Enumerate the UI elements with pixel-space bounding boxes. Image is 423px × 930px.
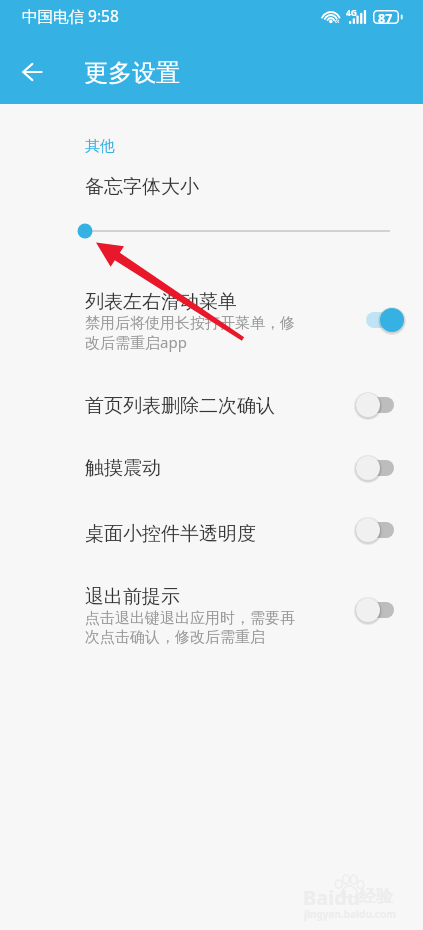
staticText: 列表左右滑动菜单 [85,290,237,314]
staticText: 桌面小控件半透明度 [85,522,256,546]
staticText: 点击退出键退出应用时，需要再 次点击确认，修改后需重启 [85,609,295,647]
staticText: 禁用后将使用长按打开菜单，修 改后需重启app [85,314,295,352]
staticText: jingyan.baidu.com [304,907,396,921]
button[interactable]: 退出前提示 关 [356,597,404,623]
button[interactable]: 列表左右滑动菜单 [0,276,423,362]
button[interactable]: 首页列表删除二次确认 [0,380,423,428]
staticText: Baidu [303,884,360,911]
button[interactable]: 桌面小控件半透明度 [0,508,423,556]
staticText: 退出前提示 [85,585,180,609]
button[interactable]: 首页列表删除二次确认 关 [356,392,404,418]
staticText: 87 [378,10,393,24]
staticText: 触摸震动 [85,456,161,480]
button[interactable]: 备忘字体大小 滑块 [70,216,405,246]
button[interactable]: 触摸震动 [0,442,423,490]
staticText: 其他 [85,137,115,156]
staticText: 备忘字体大小 [85,175,199,199]
button[interactable]: 列表左右滑动菜单 开 [356,307,404,333]
button[interactable]: 退出前提示 [0,571,423,657]
staticText: 更多设置 [84,58,180,88]
staticText: 4G [346,7,358,19]
button[interactable]: 触摸震动 关 [356,455,404,481]
staticText: 首页列表删除二次确认 [85,394,275,418]
button[interactable]: Back [10,50,54,94]
staticText: 经验 [359,886,393,907]
button[interactable]: 桌面小控件半透明度 关 [356,517,404,543]
staticText: 中国电信 9:58 [22,5,119,26]
